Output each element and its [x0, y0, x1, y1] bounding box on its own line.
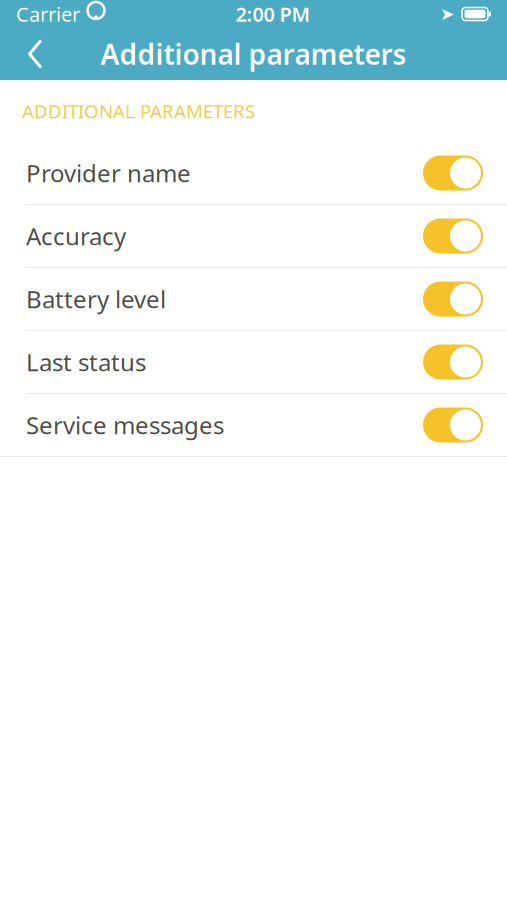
button[interactable]: Accuracy: [0, 205, 507, 268]
button[interactable]: Service messages: [0, 394, 507, 457]
staticText: Battery level: [26, 283, 166, 315]
staticText: Carrier: [16, 1, 80, 27]
staticText: Provider name: [26, 157, 191, 189]
button[interactable]: Last status: [0, 331, 507, 394]
staticText: Accuracy: [26, 220, 126, 252]
staticText: ADDITIONAL PARAMETERS: [22, 99, 255, 123]
staticText: Additional parameters: [100, 35, 406, 73]
button[interactable]: Provider name: [0, 142, 507, 205]
staticText: Last status: [26, 346, 146, 378]
staticText: 2:00 PM: [235, 1, 310, 27]
button[interactable]: Battery level: [0, 268, 507, 331]
button[interactable]: Back: [10, 28, 60, 80]
staticText: ➤: [440, 4, 455, 24]
staticText: Service messages: [26, 409, 224, 441]
